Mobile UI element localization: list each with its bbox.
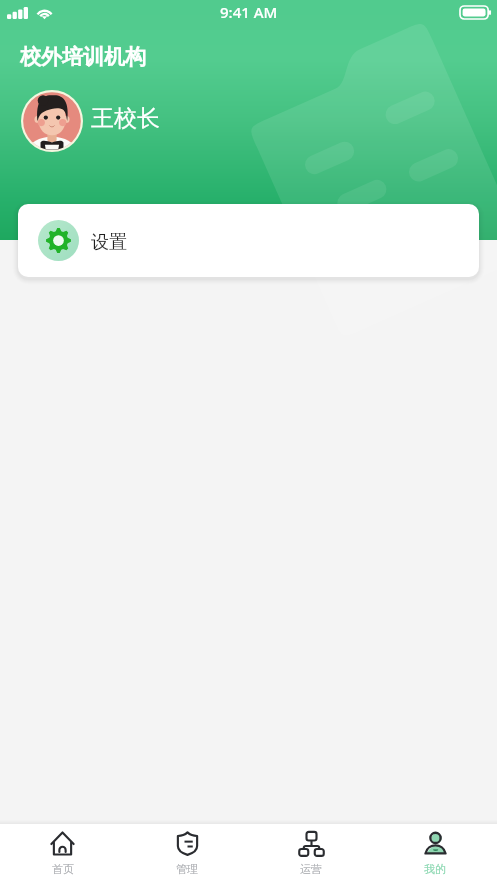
button[interactable]: 我的 [373,824,497,883]
staticText: 首页 [52,862,74,876]
button[interactable]: 首页 [0,824,125,883]
button[interactable]: 管理 [125,824,249,883]
staticText: 设置 [91,231,127,254]
staticText: 管理 [176,862,198,876]
staticText: 9:41 AM [220,2,278,22]
staticText: 运营 [300,862,322,876]
staticText: 我的 [424,862,446,876]
button[interactable]: 设置 [18,204,479,277]
staticText: 王校长 [91,104,160,133]
staticText: 校外培训机构 [20,44,146,70]
button[interactable]: 运营 [249,824,373,883]
